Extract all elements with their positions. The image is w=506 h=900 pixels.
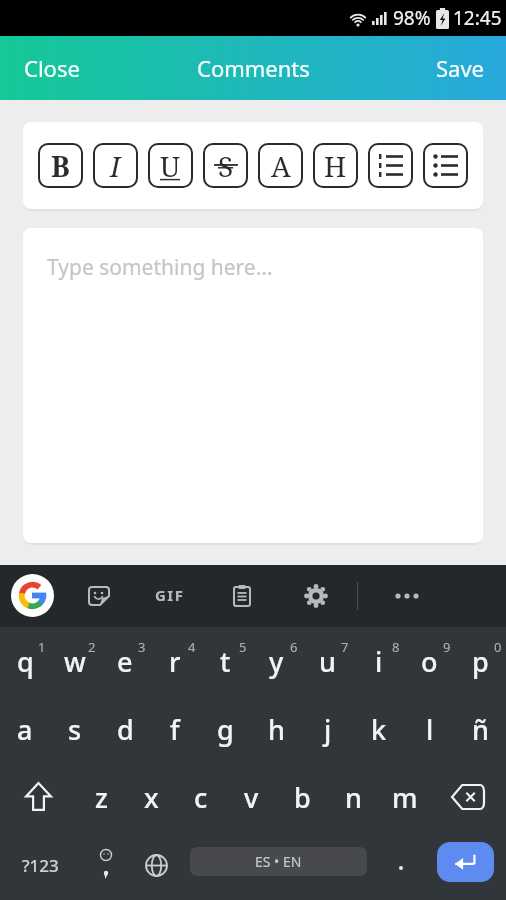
button[interactable] (376, 831, 426, 899)
staticText: 5 (239, 638, 247, 656)
button[interactable] (368, 143, 413, 188)
button[interactable] (11, 574, 54, 617)
staticText: Save (436, 53, 485, 83)
button[interactable]: U (148, 143, 193, 188)
button[interactable]: k (353, 695, 404, 763)
staticText: d (117, 711, 134, 748)
button[interactable]: b (277, 763, 328, 831)
button[interactable]: ?123 (0, 831, 81, 899)
staticText: B (51, 147, 70, 185)
button[interactable]: p (455, 627, 506, 695)
staticText: I (110, 147, 121, 185)
button[interactable] (230, 584, 254, 608)
button[interactable] (394, 584, 422, 608)
staticText: GIF (155, 585, 185, 605)
staticText: Type something here... (47, 253, 273, 282)
button[interactable]: z (76, 763, 126, 831)
button[interactable]: o (404, 627, 455, 695)
button[interactable]: y (251, 627, 302, 695)
button[interactable]: GIF (155, 585, 185, 605)
button[interactable]: j (302, 695, 353, 763)
button[interactable]: w (50, 627, 100, 695)
button[interactable]: e (100, 627, 150, 695)
staticText: h (268, 711, 285, 748)
staticText: p (472, 643, 489, 680)
staticText: a (17, 711, 33, 748)
button[interactable] (81, 831, 131, 899)
button[interactable]: ñ (455, 695, 506, 763)
staticText: Close (24, 53, 80, 83)
staticText: Comments (197, 53, 310, 83)
staticText: w (64, 643, 86, 680)
button[interactable]: i (353, 627, 404, 695)
staticText: ?123 (22, 854, 59, 877)
staticText: r (169, 643, 181, 680)
staticText: i (375, 643, 383, 680)
staticText: z (95, 779, 108, 816)
staticText: n (345, 779, 362, 816)
staticText: m (392, 779, 418, 816)
button[interactable]: l (404, 695, 455, 763)
staticText: j (324, 711, 332, 748)
button[interactable]: Type something here... (23, 228, 483, 543)
button[interactable]: q (0, 627, 50, 695)
staticText: s (68, 711, 82, 748)
staticText: 7 (341, 638, 349, 656)
button[interactable]: r (150, 627, 200, 695)
button[interactable]: a (0, 695, 50, 763)
staticText: 12:45 (453, 5, 502, 31)
button[interactable] (426, 831, 506, 899)
staticText: g (217, 711, 234, 748)
staticText: ES • EN (255, 852, 302, 871)
staticText: 2 (88, 638, 96, 656)
staticText: c (194, 779, 208, 816)
button[interactable]: S (203, 143, 248, 188)
button[interactable]: I (93, 143, 138, 188)
button[interactable]: d (100, 695, 150, 763)
button[interactable]: u (302, 627, 353, 695)
button[interactable]: x (126, 763, 176, 831)
button[interactable] (423, 143, 468, 188)
staticText: 6 (290, 638, 298, 656)
button[interactable]: h (251, 695, 302, 763)
button[interactable]: t (200, 627, 251, 695)
staticText: e (117, 643, 133, 680)
button[interactable] (87, 584, 111, 608)
button[interactable]: m (379, 763, 430, 831)
button[interactable]: n (328, 763, 379, 831)
staticText: ñ (472, 711, 489, 748)
staticText: x (144, 779, 159, 816)
button[interactable] (430, 763, 506, 831)
staticText: A (271, 147, 291, 185)
button[interactable]: Save (424, 45, 506, 91)
staticText: 98% (393, 5, 431, 31)
staticText: v (244, 779, 259, 816)
button[interactable] (0, 763, 76, 831)
button[interactable]: B (38, 143, 83, 188)
button[interactable]: v (226, 763, 277, 831)
button[interactable] (304, 584, 328, 608)
button[interactable]: s (50, 695, 100, 763)
staticText: l (426, 711, 434, 748)
staticText: b (294, 779, 311, 816)
staticText: o (421, 643, 438, 680)
button[interactable] (131, 831, 181, 899)
staticText: 3 (138, 638, 146, 656)
staticText: f (170, 711, 180, 748)
staticText: 9 (443, 638, 451, 656)
staticText: u (319, 643, 336, 680)
button[interactable]: A (258, 143, 303, 188)
button[interactable]: f (150, 695, 200, 763)
button[interactable]: Close (0, 45, 92, 91)
staticText: 1 (38, 638, 46, 656)
staticText: U (160, 147, 181, 185)
button[interactable]: ES • EN (190, 831, 367, 899)
staticText: S (218, 147, 234, 185)
staticText: 8 (392, 638, 400, 656)
button[interactable]: g (200, 695, 251, 763)
button[interactable]: H (313, 143, 358, 188)
staticText: t (220, 643, 231, 680)
staticText: 0 (494, 638, 502, 656)
staticText: k (371, 711, 387, 748)
button[interactable]: c (176, 763, 226, 831)
